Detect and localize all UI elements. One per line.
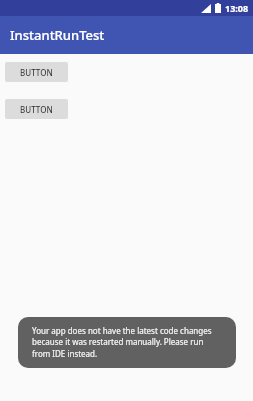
staticText: InstantRunTest bbox=[10, 26, 105, 44]
button[interactable]: Your app does not have the latest code c… bbox=[18, 317, 236, 368]
staticText: BUTTON bbox=[20, 67, 53, 78]
staticText: 13:08 bbox=[225, 2, 249, 14]
button[interactable]: BUTTON bbox=[5, 99, 68, 119]
staticText: Your app does not have the latest code c… bbox=[32, 325, 222, 360]
button[interactable]: BUTTON bbox=[5, 62, 68, 82]
staticText: BUTTON bbox=[20, 104, 53, 115]
